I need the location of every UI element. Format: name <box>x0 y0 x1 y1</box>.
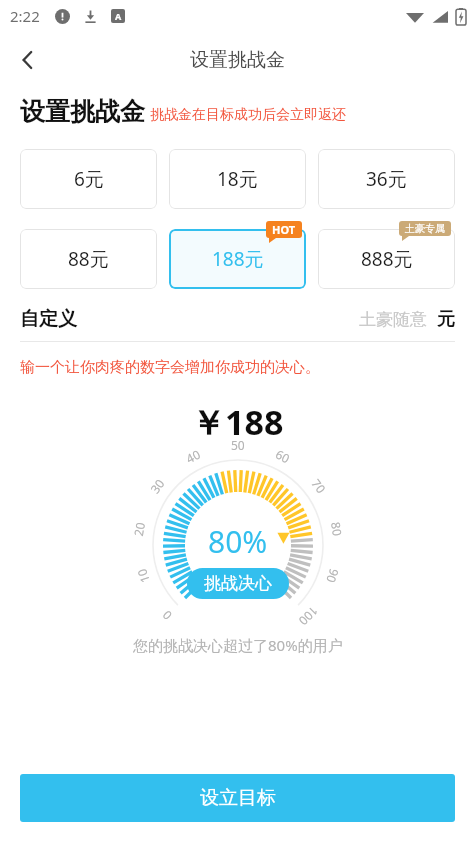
staticText: 0 <box>158 607 175 624</box>
staticText: 输一个让你肉疼的数字会增加你成功的决心。 <box>20 358 320 377</box>
staticText: 设置挑战金 <box>20 96 145 127</box>
button[interactable]: 设立目标 <box>20 774 455 822</box>
staticText: 挑战金在目标成功后会立即返还 <box>150 106 346 124</box>
staticText: 80 <box>328 521 346 537</box>
staticText: 10 <box>133 567 153 585</box>
staticText: 设置挑战金 <box>190 48 285 72</box>
button[interactable]: 188元 <box>169 229 306 289</box>
staticText: 自定义 <box>20 307 77 331</box>
staticText: 20 <box>130 521 148 537</box>
button[interactable]: 自定义 <box>20 307 455 331</box>
staticText: 188元 <box>212 246 264 272</box>
staticText: 设立目标 <box>200 786 276 810</box>
staticText: 18元 <box>217 166 258 192</box>
button[interactable]: 挑战决心 <box>187 568 289 599</box>
button[interactable]: 88元 <box>20 229 157 289</box>
staticText: ￥188 <box>191 399 284 445</box>
staticText: 元 <box>437 308 455 331</box>
staticText: HOT <box>272 222 296 237</box>
staticText: 40 <box>183 446 203 466</box>
staticText: 土豪随意 <box>359 309 427 330</box>
staticText: 70 <box>308 476 330 496</box>
button[interactable]: 36元 <box>318 149 455 209</box>
button[interactable]: Back <box>0 32 56 88</box>
staticText: 50 <box>231 437 245 453</box>
button[interactable]: 18元 <box>169 149 306 209</box>
staticText: 60 <box>273 446 293 466</box>
staticText: 88元 <box>68 246 109 272</box>
staticText: 100 <box>296 603 322 629</box>
staticText: 80% <box>208 521 268 562</box>
button[interactable]: 6元 <box>20 149 157 209</box>
staticText: 6元 <box>74 166 104 192</box>
staticText: 36元 <box>366 166 407 192</box>
staticText: 2:22 <box>10 6 40 26</box>
staticText: 30 <box>146 476 168 496</box>
staticText: 您的挑战决心超过了80%的用户 <box>133 635 343 655</box>
staticText: A <box>115 10 122 22</box>
staticText: 土豪专属 <box>405 222 445 235</box>
staticText: 888元 <box>361 246 413 272</box>
button[interactable]: 888元 <box>318 229 455 289</box>
staticText: 90 <box>323 567 343 585</box>
staticText: 挑战决心 <box>204 573 272 594</box>
